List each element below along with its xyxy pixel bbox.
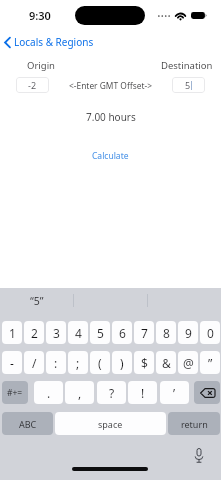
- staticText: ABC: [19, 418, 37, 430]
- staticText: 5: [97, 325, 104, 341]
- staticText: Locals & Regions: [14, 35, 94, 49]
- button[interactable]: .: [34, 381, 63, 404]
- staticText: 2: [31, 325, 38, 341]
- staticText: 4: [75, 325, 82, 341]
- button[interactable]: 3: [46, 321, 66, 344]
- button[interactable]: :: [46, 351, 66, 374]
- button[interactable]: -2: [16, 77, 49, 93]
- staticText: <-Enter GMT Offset->: [69, 80, 152, 91]
- button[interactable]: 5: [172, 77, 205, 93]
- button[interactable]: 0: [200, 321, 220, 344]
- button[interactable]: &: [156, 351, 176, 374]
- button[interactable]: 7: [134, 321, 154, 344]
- staticText: @: [183, 355, 194, 371]
- button[interactable]: “5”: [0, 288, 73, 313]
- staticText: 9:30: [29, 8, 51, 23]
- staticText: 8: [163, 325, 170, 341]
- staticText: 3: [53, 325, 60, 341]
- staticText: 5: [185, 79, 191, 91]
- button[interactable]: Calculate: [92, 150, 129, 162]
- staticText: return: [181, 418, 208, 430]
- button[interactable]: !: [128, 381, 157, 404]
- button[interactable]: 4: [68, 321, 88, 344]
- button[interactable]: ,: [65, 381, 94, 404]
- button[interactable]: 6: [112, 321, 132, 344]
- staticText: #+=: [7, 387, 23, 399]
- staticText: space: [98, 418, 123, 430]
- button[interactable]: 9: [178, 321, 198, 344]
- button[interactable]: (: [90, 351, 110, 374]
- button[interactable]: Dictation: [189, 445, 209, 465]
- staticText: ;: [76, 355, 80, 371]
- staticText: &: [162, 355, 171, 371]
- staticText: ’: [173, 385, 176, 401]
- staticText: $: [141, 355, 148, 371]
- button[interactable]: ): [112, 351, 132, 374]
- button[interactable]: /: [24, 351, 44, 374]
- button[interactable]: ’: [160, 381, 189, 404]
- button[interactable]: @: [178, 351, 198, 374]
- staticText: ,: [78, 385, 82, 401]
- staticText: -2: [28, 79, 37, 91]
- staticText: 9: [185, 325, 192, 341]
- staticText: .: [47, 385, 51, 401]
- staticText: :: [54, 355, 58, 371]
- staticText: ?: [109, 385, 115, 401]
- button[interactable]: return: [168, 412, 220, 435]
- button[interactable]: 5: [90, 321, 110, 344]
- staticText: -: [10, 355, 14, 371]
- button[interactable]: 1: [2, 321, 22, 344]
- button[interactable]: #+=: [2, 381, 28, 404]
- button[interactable]: ?: [97, 381, 126, 404]
- staticText: ): [120, 355, 124, 371]
- button[interactable]: ;: [68, 351, 88, 374]
- staticText: /: [32, 355, 37, 371]
- button[interactable]: ”: [200, 351, 220, 374]
- button[interactable]: ABC: [2, 412, 53, 435]
- staticText: (: [98, 355, 102, 371]
- staticText: Origin: [27, 59, 55, 72]
- staticText: 7.00 hours: [86, 110, 136, 124]
- button[interactable]: -: [2, 351, 22, 374]
- staticText: ”: [208, 355, 213, 371]
- staticText: 1: [9, 325, 16, 341]
- staticText: !: [141, 385, 145, 401]
- staticText: Destination: [161, 59, 213, 72]
- button[interactable]: 8: [156, 321, 176, 344]
- button[interactable]: 2: [24, 321, 44, 344]
- button[interactable]: $: [134, 351, 154, 374]
- button[interactable]: Locals & Regions: [0, 32, 100, 52]
- staticText: 0: [207, 325, 214, 341]
- staticText: 6: [119, 325, 126, 341]
- staticText: 7: [141, 325, 148, 341]
- button[interactable]: Backspace: [194, 381, 220, 404]
- staticText: “5”: [30, 294, 44, 308]
- button[interactable]: space: [55, 412, 166, 435]
